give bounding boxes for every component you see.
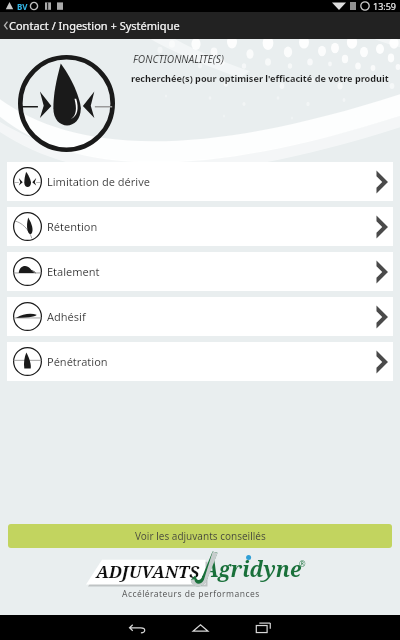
button[interactable]: Rétention [7, 207, 393, 246]
staticText: Rétention [47, 219, 98, 234]
staticText: 13:59 [373, 0, 397, 12]
button[interactable]: Home [176, 615, 224, 640]
staticText: recherchée(s) pour optimiser l'efficacit… [131, 72, 389, 84]
button[interactable]: Contact / Ingestion + Systémique [0, 12, 400, 39]
button[interactable]: Back [113, 615, 161, 640]
staticText: Adhésif [47, 309, 86, 324]
staticText: Agridyne [203, 555, 302, 584]
staticText: Contact / Ingestion + Systémique [9, 18, 180, 33]
button[interactable]: Voir les adjuvants conseillés [8, 524, 392, 548]
staticText: Voir les adjuvants conseillés [135, 529, 266, 543]
button[interactable]: Adhésif [7, 297, 393, 336]
staticText: BV [17, 1, 28, 12]
staticText: Limitation de dérive [47, 174, 150, 189]
staticText: Accélérateurs de performances [122, 588, 260, 600]
button[interactable]: Recent apps [239, 615, 287, 640]
button[interactable]: Etalement [7, 252, 393, 291]
staticText: Etalement [47, 264, 100, 279]
staticText: FONCTIONNALITE(S) [133, 52, 224, 66]
button[interactable]: Limitation de dérive [7, 162, 393, 201]
staticText: ® [299, 558, 306, 569]
staticText: Pénétration [47, 354, 108, 369]
staticText: ADJUVANTS [96, 560, 200, 583]
button[interactable]: Pénétration [7, 342, 393, 381]
